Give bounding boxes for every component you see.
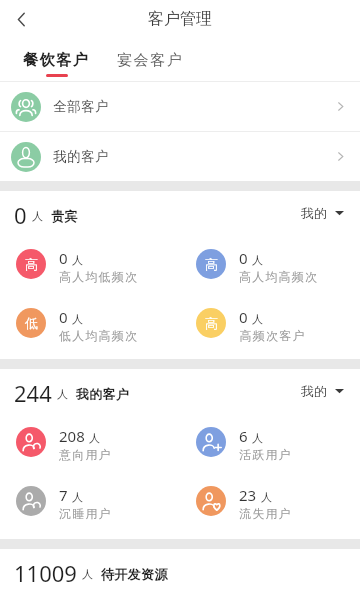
button[interactable]: 高 (180, 293, 360, 352)
button[interactable]: 23 (180, 471, 360, 530)
staticText: 意向用户 (59, 447, 112, 462)
button[interactable]: 我的 (301, 205, 344, 221)
staticText: 流失用户 (239, 506, 292, 521)
button[interactable]: 208 (0, 412, 180, 471)
staticText: 人 (89, 431, 100, 445)
button[interactable]: 高 (180, 234, 360, 293)
staticText: 我的 (301, 383, 327, 399)
staticText: 客户管理 (148, 9, 212, 29)
staticText: 我的 (301, 205, 327, 221)
staticText: 人 (72, 312, 83, 326)
button[interactable]: 7 (0, 471, 180, 530)
staticText: 人 (72, 490, 83, 504)
staticText: 高人均低频次 (59, 269, 139, 284)
staticText: 高人均高频次 (239, 269, 319, 284)
staticText: 餐饮客户 (23, 51, 90, 70)
staticText: 宴会客户 (117, 51, 184, 70)
staticText: 待开发资源 (101, 566, 168, 582)
staticText: 高 (205, 256, 218, 272)
staticText: 人 (252, 253, 263, 267)
button[interactable]: 全部客户 (0, 82, 360, 131)
staticText: 6 (239, 426, 248, 446)
staticText: 244 (14, 378, 52, 408)
staticText: 人 (252, 312, 263, 326)
staticText: 人 (72, 253, 83, 267)
staticText: 我的客户 (76, 386, 130, 402)
staticText: 低 (25, 315, 38, 331)
button[interactable]: Back (4, 2, 38, 36)
staticText: 0 (14, 200, 27, 230)
staticText: 0 (59, 248, 68, 268)
staticText: 0 (59, 307, 68, 327)
staticText: 208 (59, 426, 85, 446)
staticText: 人 (252, 431, 263, 445)
staticText: 高 (205, 315, 218, 331)
staticText: 高 (25, 256, 38, 272)
staticText: 我的客户 (53, 148, 109, 165)
staticText: 沉睡用户 (59, 506, 112, 521)
button[interactable]: 我的 (301, 383, 344, 399)
staticText: 人 (57, 387, 68, 401)
staticText: 贵宾 (51, 208, 78, 224)
staticText: 全部客户 (53, 98, 109, 115)
button[interactable]: 我的客户 (0, 132, 360, 181)
staticText: 低人均高频次 (59, 328, 139, 343)
staticText: 人 (261, 490, 272, 504)
staticText: 7 (59, 485, 68, 505)
staticText: 人 (32, 209, 43, 223)
button[interactable]: 低 (0, 293, 180, 352)
staticText: 活跃用户 (239, 447, 292, 462)
button[interactable]: 6 (180, 412, 360, 471)
staticText: 11009 (14, 558, 77, 588)
staticText: 人 (82, 567, 93, 581)
button[interactable]: 宴会客户 (117, 51, 184, 70)
button[interactable]: 高 (0, 234, 180, 293)
staticText: 0 (239, 248, 248, 268)
staticText: 0 (239, 307, 248, 327)
button[interactable]: 餐饮客户 (23, 51, 90, 77)
staticText: 23 (239, 485, 257, 505)
staticText: 高频次客户 (239, 328, 305, 343)
